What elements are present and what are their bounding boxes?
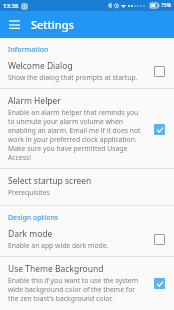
staticText: Enable an alarm helper that reminds you … [8, 108, 145, 162]
staticText: Use Theme Background [8, 263, 104, 275]
button[interactable]: Dark mode [0, 226, 174, 256]
staticText: 13:38 [3, 2, 19, 10]
staticText: Enable an app wide dark mode. [8, 241, 109, 250]
staticText: Information [8, 45, 49, 55]
staticText: Settings [31, 17, 74, 32]
button[interactable]: Use Theme Background [0, 257, 174, 309]
staticText: Welcome Dialog [8, 60, 73, 72]
staticText: Select startup screen [8, 175, 92, 187]
staticText: Prerequisites [8, 188, 50, 197]
staticText: Enable this if you want to use the syste… [8, 276, 145, 303]
button[interactable]: Open navigation drawer [5, 16, 23, 34]
staticText: Dark mode [8, 228, 53, 240]
button[interactable]: Alarm Helper toggle [151, 121, 167, 137]
button[interactable]: Welcome Dialog [0, 58, 174, 88]
staticText: Design options [8, 213, 59, 223]
button[interactable]: Welcome Dialog toggle [151, 63, 167, 79]
button[interactable]: Dark mode toggle [151, 231, 167, 247]
staticText: 75% [161, 2, 171, 9]
button[interactable]: Use Theme Background toggle [151, 275, 167, 291]
button[interactable]: Alarm Helper [0, 89, 174, 168]
button[interactable]: Select startup screen [0, 169, 174, 205]
staticText: Alarm Helper [8, 95, 61, 107]
staticText: Show the dialog that prompts at startup. [8, 73, 138, 82]
